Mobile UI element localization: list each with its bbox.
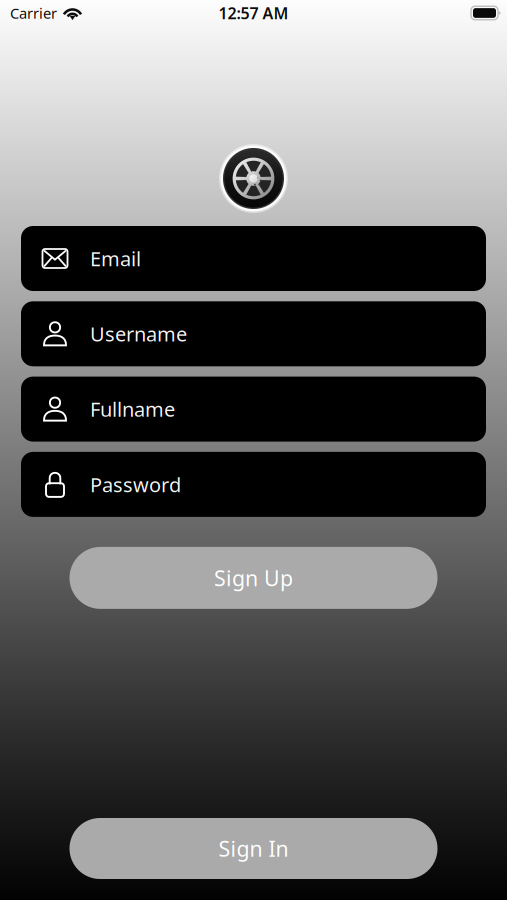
staticText: Password [90,471,181,498]
button[interactable]: Username [21,301,486,366]
button[interactable]: Email [21,226,486,291]
staticText: 12:57 AM [218,2,288,24]
button[interactable]: Fullname [21,377,486,442]
button[interactable]: Sign Up [69,547,437,609]
button[interactable]: Sign In [69,818,437,879]
staticText: Carrier [10,3,57,23]
staticText: Fullname [90,396,175,422]
staticText: Username [90,320,187,347]
staticText: Sign Up [214,564,293,592]
button[interactable]: Password [21,452,486,517]
staticText: Email [90,245,141,272]
staticText: Sign In [218,834,288,863]
